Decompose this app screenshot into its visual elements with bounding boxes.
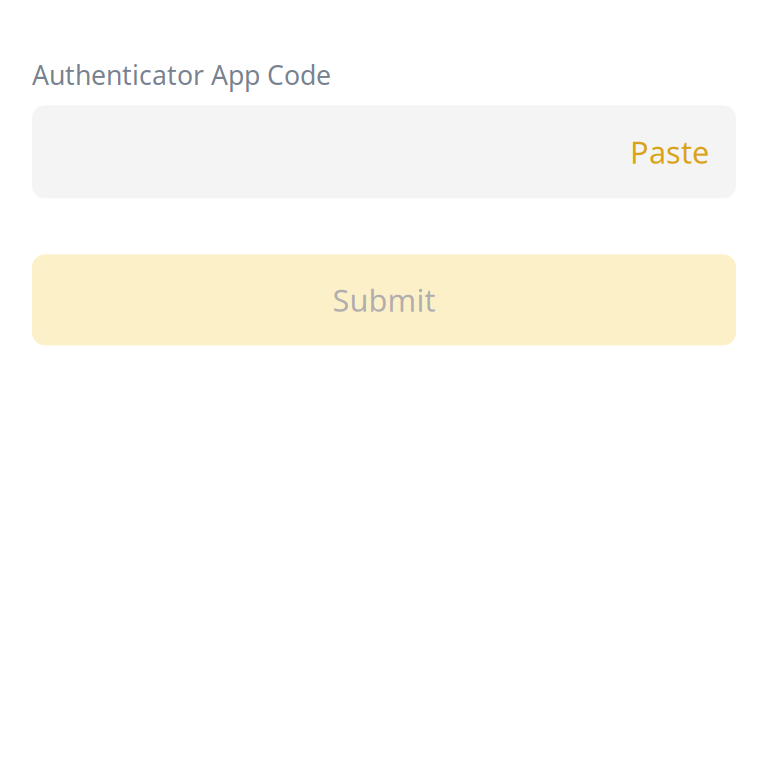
- staticText: Submit: [332, 280, 435, 320]
- staticText: Paste: [630, 132, 709, 172]
- staticText: Authenticator App Code: [32, 57, 331, 92]
- button[interactable]: Submit: [32, 254, 736, 345]
- button[interactable]: Paste: [630, 132, 709, 172]
